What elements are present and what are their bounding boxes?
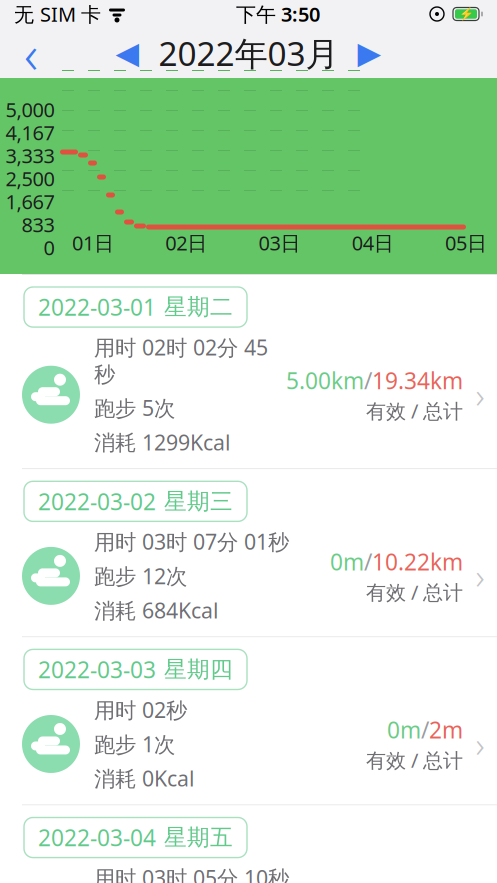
staticText: 消耗 684Kcal [94,596,219,624]
staticText: 833 [21,211,54,238]
staticText: 01日 [72,229,114,256]
staticText: 消耗 1299Kcal [94,428,231,456]
staticText: 4,167 [5,119,54,146]
staticText: 用时 03时 07分 01秒 [94,527,289,556]
staticText: 04日 [352,229,394,256]
staticText: 2022-03-02 [38,486,156,516]
staticText: 星期三 [164,487,233,515]
button[interactable]: 2022-03-02 [0,469,497,636]
staticText: / [421,715,429,745]
staticText: 有效 / 总计 [366,747,463,773]
staticText: ◀ [115,36,139,70]
staticText: ⚡ [458,7,473,21]
staticText: 0m [387,715,421,745]
staticText: › [475,721,484,767]
staticText: 0 [43,234,54,261]
staticText: ‹ [24,18,38,88]
staticText: 无 SIM 卡 [14,1,101,27]
staticText: 有效 / 总计 [366,397,463,424]
button[interactable]: 2022-03-04 [0,805,497,883]
staticText: 03日 [258,229,300,256]
staticText: 有效 / 总计 [366,579,463,605]
staticText: 19.34km [372,365,463,395]
button[interactable]: Previous month [110,35,144,71]
button[interactable]: 2022-03-01 [0,275,497,468]
staticText: 星期四 [164,655,233,683]
staticText: 5,000 [5,96,54,123]
staticText: › [475,553,484,599]
staticText: 下午 3:50 [236,1,320,27]
button[interactable]: 2022-03-03 [0,637,497,804]
staticText: 2m [429,715,463,745]
staticText: › [475,372,484,418]
staticText: / [364,547,372,577]
staticText: 5.00km [286,365,364,395]
staticText: 星期二 [164,293,233,321]
staticText: ▶ [357,36,381,70]
button[interactable]: Back [8,30,54,76]
staticText: 1,667 [5,188,54,215]
staticText: 星期五 [164,824,233,851]
staticText: 跑步 12次 [94,562,187,590]
staticText: 用时 02时 02分 45秒 [94,333,268,388]
button[interactable]: Next month [352,35,386,71]
staticText: 跑步 5次 [94,394,175,422]
staticText: 10.22km [372,547,463,577]
staticText: 用时 02秒 [94,695,187,724]
staticText: 05日 [445,229,487,256]
staticText: 2022年03月 [158,31,338,75]
staticText: 2022-03-04 [38,822,156,853]
staticText: 0m [330,547,364,577]
staticText: 跑步 1次 [94,730,175,758]
staticText: 3,333 [5,142,54,169]
staticText: 用时 03时 05分 10秒 [94,864,289,883]
staticText: 2022-03-03 [38,654,156,684]
staticText: 02日 [165,229,207,256]
staticText: 消耗 0Kcal [94,764,195,792]
staticText: / [364,365,372,395]
staticText: 2022-03-01 [38,292,156,322]
staticText: 2,500 [5,165,54,192]
